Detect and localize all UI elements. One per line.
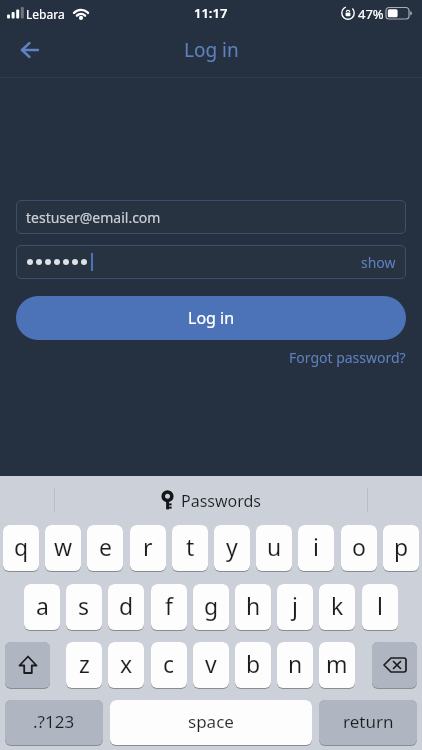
button[interactable]: a — [24, 584, 60, 630]
button[interactable]: r — [130, 525, 166, 571]
staticText: h — [246, 590, 261, 621]
staticText: b — [246, 648, 261, 679]
staticText: z — [79, 648, 90, 679]
button[interactable]: space — [110, 700, 312, 745]
button[interactable]: v — [193, 642, 229, 688]
button[interactable]: g — [193, 584, 229, 630]
staticText: l — [377, 590, 383, 621]
staticText: .?123 — [33, 710, 75, 733]
staticText: p — [394, 531, 409, 562]
button[interactable]: s — [66, 584, 102, 630]
staticText: Forgot password? — [289, 348, 406, 367]
staticText: d — [119, 590, 134, 621]
staticText: o — [352, 531, 366, 562]
button[interactable] — [5, 642, 50, 688]
staticText: Log in — [184, 37, 239, 63]
staticText: space — [188, 710, 234, 733]
button[interactable]: Forgot password? — [289, 348, 406, 367]
staticText: x — [120, 648, 133, 679]
staticText: y — [226, 531, 238, 562]
staticText: f — [165, 590, 173, 621]
button[interactable]: .?123 — [5, 700, 103, 745]
button[interactable]: testuser@email.com — [16, 200, 406, 234]
button[interactable]: t — [172, 525, 208, 571]
staticText: 11:17 — [194, 4, 228, 22]
button[interactable]: w — [45, 525, 81, 571]
button[interactable]: i — [298, 525, 334, 571]
staticText: testuser@email.com — [26, 208, 161, 227]
staticText: g — [204, 590, 219, 621]
staticText: return — [343, 710, 394, 733]
button[interactable]: l — [362, 584, 398, 630]
staticText: c — [163, 648, 175, 679]
staticText: e — [99, 531, 112, 562]
staticText: s — [78, 590, 90, 621]
staticText: n — [288, 648, 303, 679]
staticText: k — [331, 590, 344, 621]
staticText: u — [267, 531, 282, 562]
staticText: v — [205, 648, 217, 679]
button[interactable]: h — [235, 584, 271, 630]
button[interactable]: j — [277, 584, 313, 630]
button[interactable]: y — [214, 525, 250, 571]
button[interactable]: show — [361, 253, 396, 272]
button[interactable] — [372, 642, 417, 688]
button[interactable]: k — [319, 584, 355, 630]
button[interactable] — [12, 30, 56, 74]
button[interactable]: z — [66, 642, 102, 688]
staticText: r — [143, 531, 153, 562]
staticText: i — [313, 531, 319, 562]
button[interactable]: m — [319, 642, 355, 688]
button[interactable]: show — [16, 245, 406, 279]
staticText: a — [36, 590, 49, 621]
button[interactable]: q — [3, 525, 39, 571]
staticText: q — [14, 531, 29, 562]
button[interactable]: Log in — [16, 296, 406, 340]
button[interactable]: c — [151, 642, 187, 688]
staticText: Log in — [188, 307, 235, 329]
button[interactable]: e — [87, 525, 123, 571]
button[interactable]: b — [235, 642, 271, 688]
staticText: w — [54, 531, 73, 562]
staticText: show — [361, 253, 396, 272]
button[interactable]: d — [108, 584, 144, 630]
button[interactable]: return — [319, 700, 417, 745]
button[interactable]: f — [151, 584, 187, 630]
staticText: m — [326, 648, 348, 679]
staticText: Lebara — [26, 6, 65, 22]
staticText: j — [292, 590, 298, 621]
staticText: Passwords — [181, 490, 262, 512]
button[interactable]: Passwords — [161, 476, 262, 525]
staticText: 47% — [358, 5, 384, 23]
button[interactable]: p — [383, 525, 419, 571]
button[interactable]: o — [341, 525, 377, 571]
button[interactable]: n — [277, 642, 313, 688]
button[interactable]: x — [108, 642, 144, 688]
staticText: t — [186, 531, 195, 562]
button[interactable]: u — [256, 525, 292, 571]
